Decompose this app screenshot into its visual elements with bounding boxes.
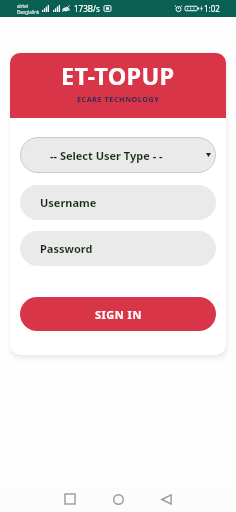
staticText: 173B/s [74, 3, 100, 14]
button[interactable]: Recent apps [46, 486, 94, 512]
button[interactable]: Home [94, 486, 142, 512]
staticText: Banglalink [17, 9, 40, 15]
button[interactable]: Back [142, 486, 190, 512]
staticText: Username [40, 195, 97, 210]
staticText: ECARE TECHNOLOGY [77, 94, 160, 104]
staticText: SIGN IN [95, 307, 142, 322]
staticText: airtel [17, 3, 28, 9]
button[interactable]: Username [20, 185, 216, 220]
button[interactable]: SIGN IN [20, 297, 216, 331]
button[interactable]: Password [20, 231, 216, 266]
staticText: -- Select User Type - - [50, 148, 163, 163]
staticText: 1:02 [204, 3, 220, 14]
staticText: ET-TOPUP [61, 60, 175, 92]
staticText: Password [40, 241, 93, 256]
button[interactable]: -- Select User Type - - [20, 137, 216, 173]
